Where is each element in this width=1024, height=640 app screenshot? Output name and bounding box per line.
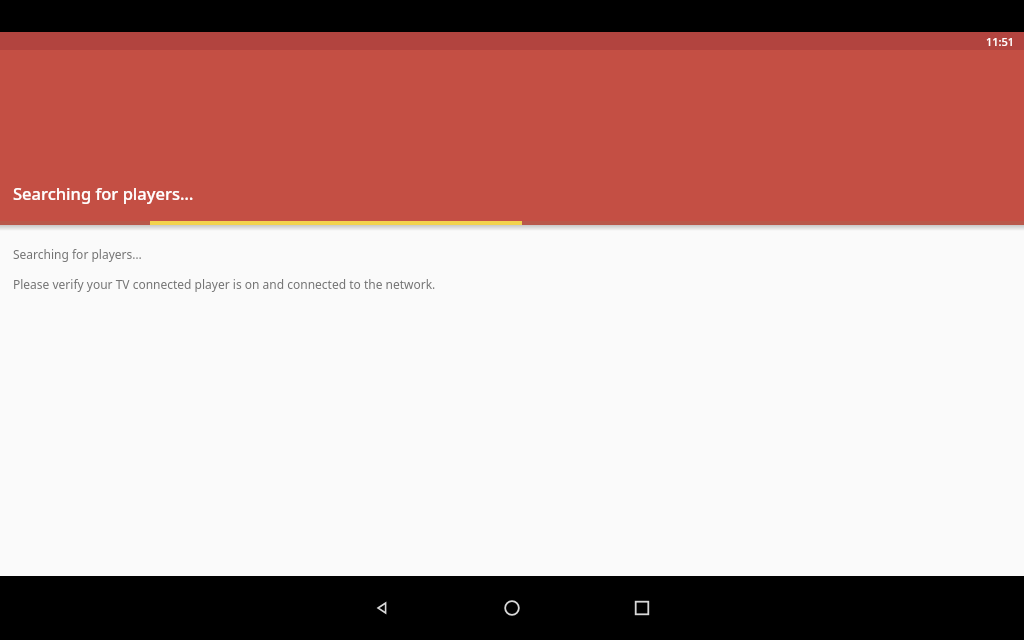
button[interactable]: Home	[480, 576, 544, 640]
staticText: Searching for players…	[13, 246, 142, 262]
button[interactable]: Recent apps	[610, 576, 674, 640]
staticText: Please verify your TV connected player i…	[13, 276, 436, 292]
staticText: Searching for players…	[13, 182, 194, 204]
button[interactable]: Back	[350, 576, 414, 640]
staticText: 11:51	[986, 34, 1015, 49]
